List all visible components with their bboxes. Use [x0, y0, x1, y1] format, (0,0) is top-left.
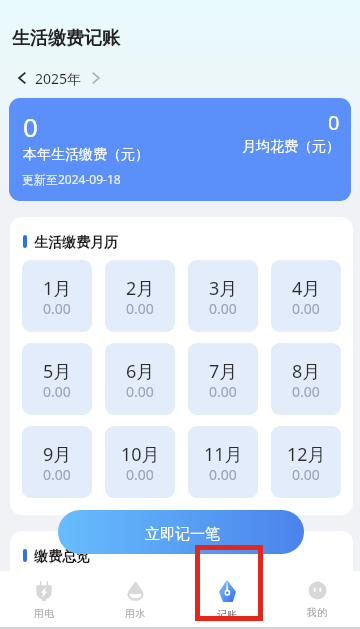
staticText: 11月 — [204, 442, 243, 467]
staticText: 生活缴费记账 — [12, 27, 120, 50]
button[interactable]: 10月 — [105, 426, 175, 498]
other: Record entry — [219, 580, 236, 602]
staticText: 0.00 — [43, 382, 71, 401]
button[interactable]: 8月 — [271, 343, 341, 415]
staticText: 月均花费（元） — [242, 138, 340, 156]
button[interactable]: Select year — [16, 68, 102, 88]
staticText: 9月 — [43, 442, 72, 467]
staticText: 10月 — [121, 442, 160, 467]
staticText: 6月 — [126, 359, 155, 384]
staticText: 我的 — [307, 606, 327, 619]
staticText: 本年生活缴费（元） — [23, 146, 149, 164]
staticText: 7月 — [209, 359, 238, 384]
staticText: 记账 — [217, 608, 237, 621]
button[interactable]: 2月 — [105, 260, 175, 332]
staticText: 生活缴费月历 — [34, 234, 118, 252]
staticText: 0.00 — [43, 465, 71, 484]
staticText: 0.00 — [292, 382, 320, 401]
other: Water — [127, 581, 144, 601]
staticText: 3月 — [209, 276, 238, 301]
staticText: 2月 — [126, 276, 155, 301]
staticText: 1月 — [43, 276, 72, 301]
button[interactable]: 7月 — [188, 343, 258, 415]
staticText: 8月 — [292, 359, 321, 384]
staticText: 12月 — [287, 442, 326, 467]
button[interactable]: 5月 — [22, 343, 92, 415]
staticText: 5月 — [43, 359, 72, 384]
staticText: 0.00 — [43, 299, 71, 318]
staticText: 更新至2024-09-18 — [22, 171, 121, 187]
staticText: 0.00 — [126, 382, 154, 401]
staticText: 缴费总览 — [34, 548, 90, 566]
staticText: 0.00 — [209, 465, 237, 484]
button[interactable]: Electricity — [0, 571, 90, 629]
button[interactable]: 12月 — [271, 426, 341, 498]
staticText: 2025年 — [35, 69, 82, 88]
staticText: 0.00 — [292, 299, 320, 318]
button[interactable]: 4月 — [271, 260, 341, 332]
button[interactable]: 1月 — [22, 260, 92, 332]
staticText: 0.00 — [209, 382, 237, 401]
button[interactable]: Profile — [270, 571, 360, 629]
staticText: 用水 — [125, 607, 145, 620]
staticText: 0.00 — [209, 299, 237, 318]
button[interactable]: Record entry — [180, 571, 270, 629]
button[interactable]: 9月 — [22, 426, 92, 498]
staticText: 0.00 — [126, 465, 154, 484]
button[interactable]: 11月 — [188, 426, 258, 498]
other: Profile — [308, 581, 327, 600]
button[interactable]: 3月 — [188, 260, 258, 332]
staticText: 0 — [328, 109, 340, 136]
button[interactable]: 6月 — [105, 343, 175, 415]
button[interactable]: Water — [90, 571, 180, 629]
staticText: 0.00 — [292, 465, 320, 484]
staticText: 4月 — [292, 276, 321, 301]
staticText: 立即记一笔 — [145, 525, 220, 544]
staticText: 用电 — [34, 607, 54, 620]
other: Electricity — [36, 581, 52, 601]
button[interactable]: 立即记一笔 — [58, 510, 304, 554]
staticText: 0 — [23, 109, 38, 144]
staticText: 0.00 — [126, 299, 154, 318]
button[interactable]: 0 — [9, 98, 351, 201]
